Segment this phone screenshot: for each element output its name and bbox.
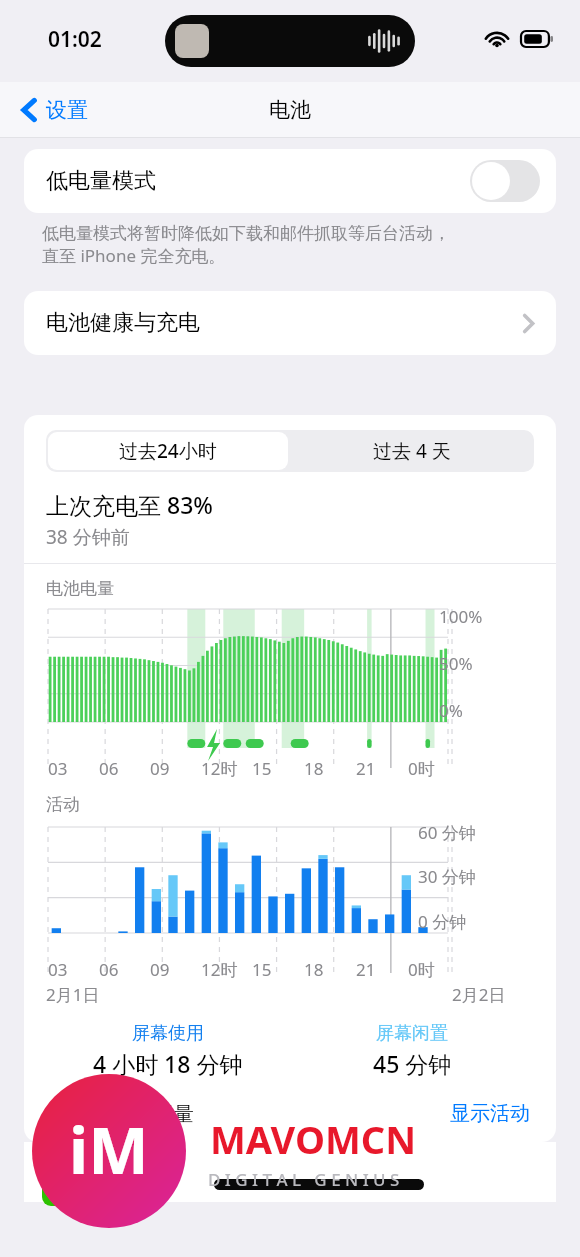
staticText: 21 <box>356 757 376 780</box>
staticText: 06 <box>99 757 119 780</box>
staticText: 0% <box>439 699 463 722</box>
staticText: 100% <box>439 605 483 628</box>
staticText: 18 <box>304 757 324 780</box>
staticText: 2月2日 <box>452 983 506 1006</box>
staticText: 15 <box>252 958 272 981</box>
staticText: D I G I T A L G E N I U S <box>208 1168 400 1191</box>
staticText: 2月1日 <box>46 983 100 1006</box>
staticText: 上次充电至 83% <box>46 489 213 520</box>
staticText: 屏幕使用 <box>132 1022 204 1045</box>
staticText: 01:02 <box>48 25 102 54</box>
staticText: 设置 <box>46 97 88 123</box>
staticText: MAVOMCN <box>210 1113 417 1165</box>
staticText: 活动 <box>46 794 80 815</box>
staticText: 0时 <box>408 757 435 780</box>
button[interactable]: 微信 <box>24 1142 556 1202</box>
button[interactable]: 设置 <box>16 93 94 127</box>
staticText: 12时 <box>201 958 238 981</box>
button[interactable]: 电池健康与充电 <box>24 291 556 355</box>
button[interactable]: 过去24小时 <box>48 432 288 470</box>
staticText: 60 分钟 <box>418 821 476 844</box>
staticText: 低电量模式 <box>46 167 156 195</box>
staticText: 30 分钟 <box>418 865 476 888</box>
staticText: 45 分钟 <box>373 1048 452 1079</box>
staticText: 0 分钟 <box>418 910 467 933</box>
staticText: 过去24小时 <box>119 438 217 464</box>
button[interactable]: 过去 4 天 <box>290 430 534 472</box>
staticText: 屏幕闲置 <box>376 1022 448 1045</box>
staticText: 电池电量 <box>46 578 114 599</box>
staticText: 电池健康与充电 <box>46 309 200 337</box>
staticText: 微信 <box>98 1174 142 1202</box>
staticText: 03 <box>48 757 68 780</box>
staticText: 21 <box>356 958 376 981</box>
staticText: 38 分钟前 <box>46 524 130 550</box>
staticText: 03 <box>48 958 68 981</box>
staticText: 12时 <box>201 757 238 780</box>
staticText: 4 小时 18 分钟 <box>93 1048 243 1079</box>
staticText: 低电量模式将暂时降低如下载和邮件抓取等后台活动， <box>42 223 450 244</box>
staticText: 电池 <box>269 97 311 123</box>
staticText: 50% <box>439 652 473 675</box>
button[interactable]: 低电量模式 <box>24 149 556 213</box>
staticText: 09 <box>150 757 170 780</box>
staticText: 直至 iPhone 完全充电。 <box>42 244 226 267</box>
staticText: 06 <box>99 958 119 981</box>
staticText: 09 <box>150 958 170 981</box>
staticText: 过去 4 天 <box>373 438 451 464</box>
button[interactable]: 显示活动 <box>446 1097 534 1130</box>
staticText: 18 <box>304 958 324 981</box>
staticText: 15 <box>252 757 272 780</box>
staticText: 按 App 显示用量 <box>46 1100 194 1127</box>
button[interactable]: 低电量模式开关 <box>470 160 540 202</box>
staticText: 0时 <box>408 958 435 981</box>
staticText: 显示活动 <box>450 1101 530 1126</box>
staticText: iM <box>69 1106 149 1193</box>
